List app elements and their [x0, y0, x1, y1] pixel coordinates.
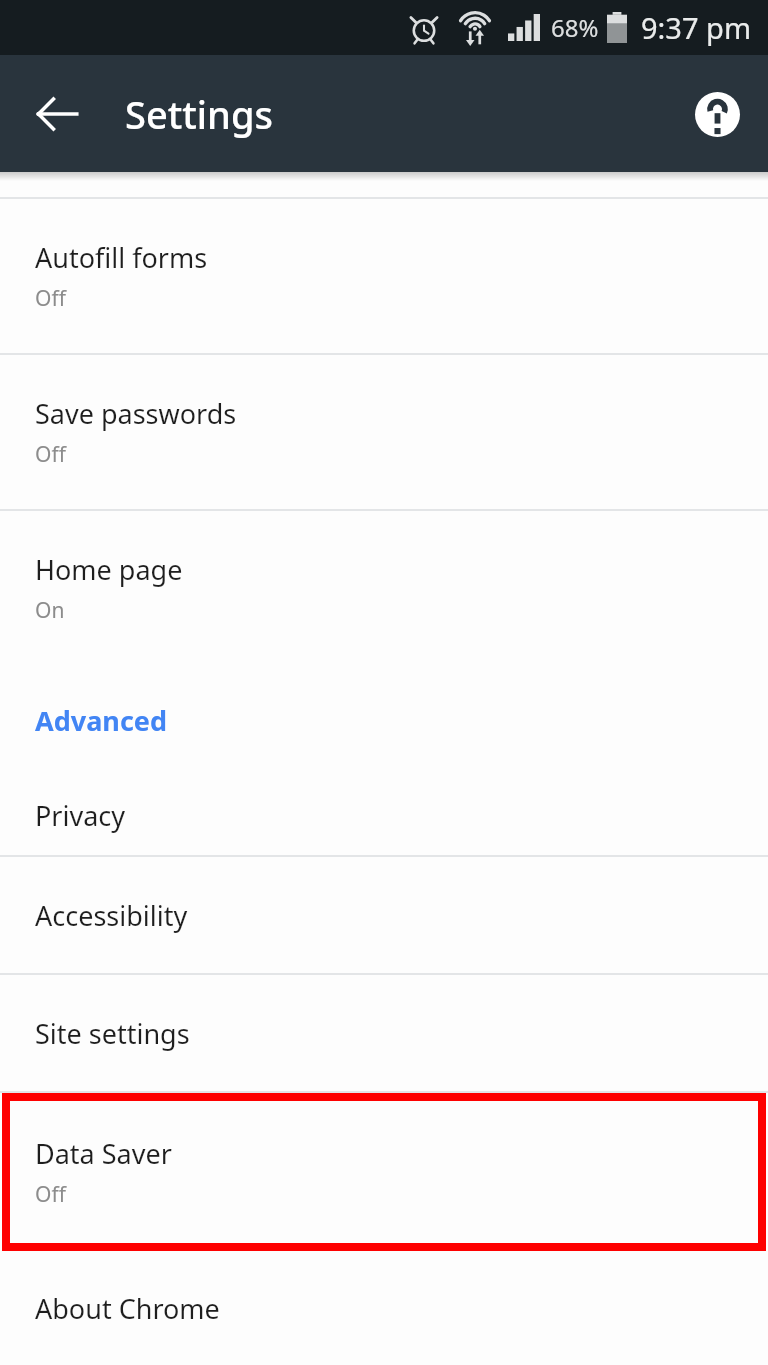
- staticText: Settings: [125, 88, 273, 140]
- staticText: Save passwords: [35, 395, 237, 432]
- staticText: Autofill forms: [35, 239, 208, 276]
- staticText: Off: [35, 440, 66, 469]
- staticText: Data Saver: [35, 1135, 172, 1172]
- staticText: Accessibility: [35, 897, 188, 934]
- button[interactable]: Site settings: [0, 975, 768, 1091]
- button[interactable]: Help: [686, 83, 748, 145]
- staticText: Off: [35, 284, 66, 313]
- staticText: About Chrome: [35, 1290, 220, 1327]
- button[interactable]: Autofill forms: [0, 199, 768, 353]
- staticText: Off: [35, 1180, 66, 1209]
- button[interactable]: About Chrome: [0, 1251, 768, 1365]
- staticText: 68%: [551, 11, 599, 44]
- staticText: Advanced: [35, 702, 168, 739]
- button[interactable]: Accessibility: [0, 857, 768, 973]
- button[interactable]: Privacy: [0, 775, 768, 855]
- staticText: On: [35, 596, 65, 625]
- staticText: Privacy: [35, 797, 126, 834]
- staticText: Site settings: [35, 1015, 190, 1052]
- button[interactable]: Home page: [0, 511, 768, 665]
- staticText: 9:37 pm: [641, 8, 752, 47]
- button[interactable]: Back: [24, 81, 90, 147]
- button[interactable]: Save passwords: [0, 355, 768, 509]
- button[interactable]: Data Saver: [0, 1093, 768, 1251]
- staticText: Home page: [35, 551, 183, 588]
